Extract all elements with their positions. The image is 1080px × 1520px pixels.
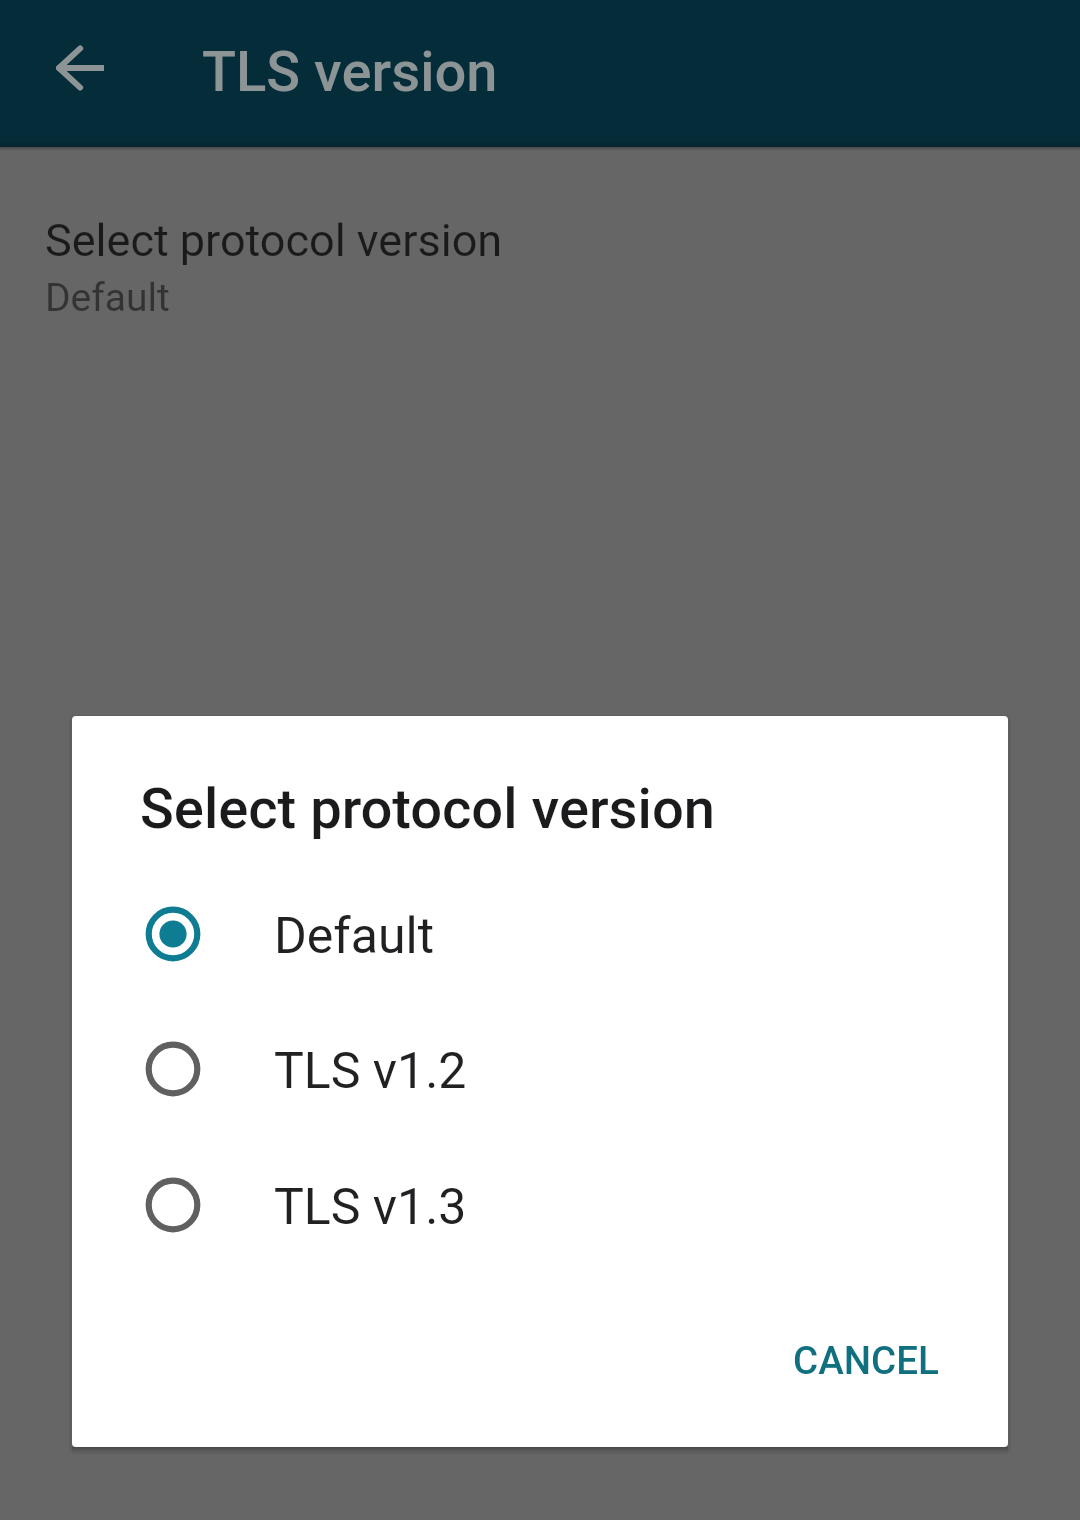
button[interactable]: TLS v1.3 <box>72 1137 1008 1272</box>
staticText: Default <box>274 907 434 966</box>
staticText: TLS v1.3 <box>274 1178 467 1237</box>
button[interactable]: CANCEL <box>763 1312 969 1409</box>
button[interactable]: TLS v1.2 <box>72 1001 1008 1136</box>
staticText: CANCEL <box>793 1338 939 1383</box>
staticText: Select protocol version <box>45 214 503 267</box>
button[interactable]: Select protocol version <box>0 155 1080 359</box>
staticText: Select protocol version <box>140 776 715 842</box>
staticText: TLS v1.2 <box>274 1042 467 1101</box>
staticText: TLS version <box>202 39 498 105</box>
button[interactable]: Default <box>72 866 1008 1001</box>
button[interactable]: Navigate up <box>8 0 152 136</box>
staticText: Default <box>45 275 170 321</box>
